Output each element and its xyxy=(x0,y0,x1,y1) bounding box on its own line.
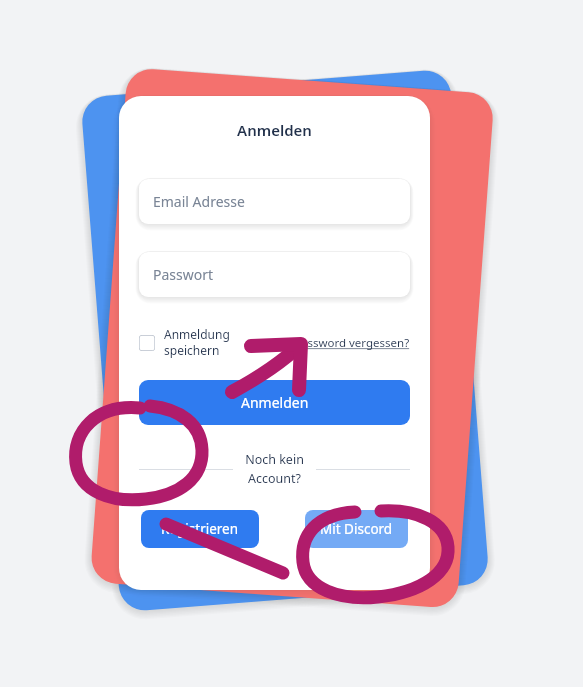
button[interactable]: Password vergessen? xyxy=(294,335,410,351)
button[interactable]: Anmeldung speichern xyxy=(139,326,230,359)
button[interactable]: Anmelden xyxy=(139,380,410,425)
button[interactable]: Passwort xyxy=(139,252,410,297)
staticText: Noch kein Account? xyxy=(245,451,304,487)
staticText: Email Adresse xyxy=(153,192,245,211)
staticText: Passwort xyxy=(153,265,214,284)
staticText: Registrieren xyxy=(161,520,239,538)
staticText: Anmelden xyxy=(241,393,309,412)
staticText: Anmeldung speichern xyxy=(164,326,230,359)
button[interactable]: Mit Discord xyxy=(305,510,408,548)
staticText: Mit Discord xyxy=(320,520,393,538)
button[interactable]: Email Adresse xyxy=(139,179,410,224)
button[interactable]: Registrieren xyxy=(141,510,259,548)
staticText: Anmelden xyxy=(119,120,430,140)
